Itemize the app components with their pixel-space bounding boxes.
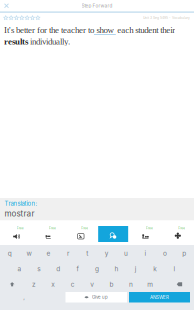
button[interactable]: Close: [0, 0, 13, 12]
staticText: Free: [81, 226, 88, 230]
staticText: l: [174, 265, 176, 273]
button[interactable]: a: [10, 261, 29, 276]
button[interactable]: v: [82, 276, 102, 292]
staticText: results: [4, 36, 28, 46]
button[interactable]: r: [58, 245, 78, 261]
staticText: b: [109, 280, 113, 288]
staticText: n: [129, 280, 133, 288]
staticText: It's better for the teacher to: [4, 25, 94, 35]
staticText: k: [153, 265, 157, 273]
button[interactable]: k: [145, 261, 165, 276]
staticText: g: [95, 265, 99, 273]
button[interactable]: Play audio: [0, 220, 32, 245]
button[interactable]: Give up: [65, 292, 127, 302]
button[interactable]: t: [78, 245, 97, 261]
button[interactable]: Show image: [65, 220, 97, 245]
staticText: ANSWER: [150, 294, 169, 300]
staticText: each student their: [117, 25, 175, 35]
button[interactable]: y: [97, 245, 116, 261]
staticText: Give up: [92, 295, 108, 300]
button[interactable]: q: [0, 245, 19, 261]
button[interactable]: g: [87, 261, 107, 276]
staticText: a: [17, 265, 21, 273]
button[interactable]: o: [155, 245, 175, 261]
button[interactable]: Delete: [165, 276, 194, 292]
staticText: j: [135, 265, 137, 273]
button[interactable]: c: [63, 276, 82, 292]
button[interactable]: Play slowly: [32, 220, 65, 245]
staticText: show: [96, 25, 113, 35]
staticText: Free: [17, 226, 24, 230]
staticText: Step Forward: [81, 3, 112, 8]
button[interactable]: i: [136, 245, 155, 261]
button[interactable]: f: [68, 261, 87, 276]
staticText: w: [27, 249, 32, 257]
staticText: t: [86, 249, 88, 257]
button[interactable]: Discussion: [129, 220, 162, 245]
button[interactable]: p: [175, 245, 194, 261]
button[interactable]: e: [39, 245, 58, 261]
staticText: c: [71, 280, 75, 288]
button[interactable]: z: [24, 276, 44, 292]
button[interactable]: m: [141, 276, 160, 292]
staticText: x: [51, 280, 55, 288]
button[interactable]: b: [102, 276, 121, 292]
staticText: p: [182, 249, 186, 257]
staticText: m: [147, 280, 153, 288]
staticText: Translation:: [5, 200, 38, 207]
staticText: i: [144, 249, 146, 257]
button[interactable]: More activities: [162, 220, 194, 245]
button[interactable]: l: [165, 261, 184, 276]
staticText: individually.: [28, 36, 70, 46]
staticText: s: [37, 265, 40, 273]
staticText: Free: [49, 226, 56, 230]
staticText: Unit 3 Seg 5495 - Vocabulary: [143, 16, 190, 20]
staticText: q: [8, 249, 12, 257]
button[interactable]: Shift: [0, 276, 24, 292]
staticText: h: [114, 265, 118, 273]
button[interactable]: x: [44, 276, 63, 292]
staticText: u: [124, 249, 128, 257]
staticText: mostrar: [5, 209, 35, 218]
staticText: ,: [23, 294, 25, 301]
staticText: e: [46, 249, 50, 257]
staticText: y: [105, 249, 109, 257]
staticText: v: [90, 280, 94, 288]
button[interactable]: w: [19, 245, 39, 261]
staticText: Free: [178, 226, 185, 230]
staticText: z: [32, 280, 36, 288]
button[interactable]: d: [48, 261, 68, 276]
button[interactable]: ANSWER: [129, 292, 190, 302]
button[interactable]: u: [116, 245, 136, 261]
button[interactable]: Translation: [97, 220, 129, 245]
staticText: Free: [146, 226, 153, 230]
button[interactable]: n: [121, 276, 141, 292]
button[interactable]: h: [107, 261, 126, 276]
button[interactable]: j: [126, 261, 145, 276]
staticText: f: [77, 265, 79, 273]
staticText: d: [56, 265, 60, 273]
button[interactable]: s: [29, 261, 48, 276]
staticText: r: [67, 249, 69, 257]
staticText: o: [163, 249, 167, 257]
